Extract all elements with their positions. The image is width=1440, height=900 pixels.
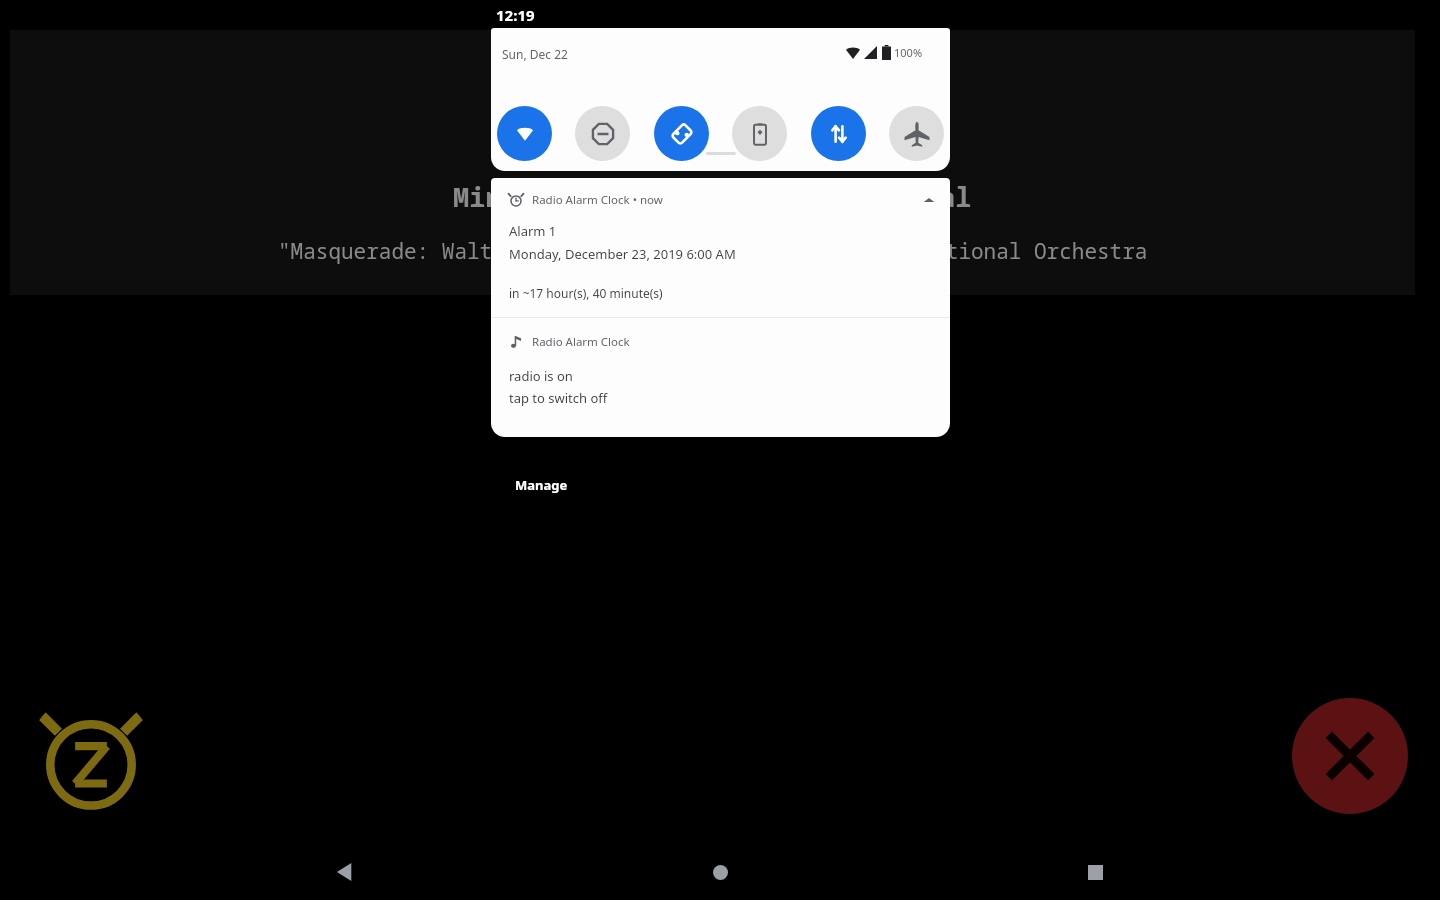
staticText: tap to switch off (509, 389, 608, 407)
staticText: 100% (894, 45, 923, 60)
button[interactable]: Snooze (28, 693, 154, 819)
staticText: Sun, Dec 22 (502, 46, 568, 62)
button[interactable]: Manage (505, 472, 578, 498)
button[interactable]: Radio Alarm Clock • now (491, 178, 950, 317)
button[interactable]: Wi-Fi (497, 106, 552, 161)
button[interactable]: Back (315, 844, 375, 900)
staticText: Radio Alarm Clock (532, 334, 630, 350)
staticText: in ~17 hour(s), 40 minute(s) (509, 285, 663, 301)
button[interactable]: Airplane mode (889, 106, 944, 161)
staticText: 12:19 (496, 5, 535, 25)
staticText: Radio Alarm Clock • now (532, 192, 663, 208)
button[interactable]: Dismiss alarm (1292, 698, 1408, 814)
button[interactable]: Recent apps (1065, 844, 1125, 900)
button[interactable]: Battery Saver (732, 106, 787, 161)
staticText: "Masquerade: Waltz" by Aram Khachaturian… (278, 237, 1148, 266)
staticText: radio is on (509, 367, 573, 385)
button[interactable]: Mobile data (811, 106, 866, 161)
staticText: Minnesota Public Radio Classical (453, 178, 972, 215)
staticText: Manage (515, 476, 568, 494)
button[interactable]: Do Not Disturb (575, 106, 630, 161)
staticText: Alarm 1 (509, 222, 557, 240)
button[interactable]: Home (690, 844, 750, 900)
staticText: Monday, December 23, 2019 6:00 AM (509, 245, 736, 263)
button[interactable]: Auto-rotate (654, 106, 709, 161)
button[interactable]: Radio Alarm Clock (491, 318, 950, 437)
